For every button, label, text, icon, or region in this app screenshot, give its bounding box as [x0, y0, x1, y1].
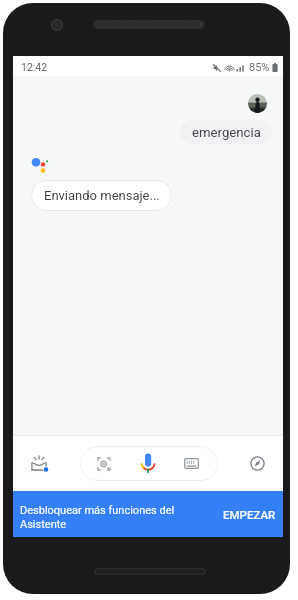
button[interactable]: Desbloquear más funciones del Asistente [13, 491, 283, 537]
button[interactable]: Voice search [126, 446, 170, 481]
button[interactable]: Account [248, 94, 267, 113]
staticText: Desbloquear más funciones del Asistente [20, 504, 198, 530]
button[interactable]: emergencia [180, 120, 272, 144]
button[interactable]: Keyboard [169, 446, 213, 481]
button[interactable]: Snapshot [21, 445, 57, 481]
button[interactable]: Google Lens [82, 446, 126, 481]
staticText: 85% [249, 61, 270, 74]
button[interactable]: Enviando mensaje... [31, 180, 172, 211]
staticText: 12:42 [21, 61, 48, 73]
staticText: EMPEZAR [223, 508, 276, 521]
button[interactable]: Explore [239, 445, 275, 481]
staticText: emergencia [192, 125, 261, 140]
staticText: Enviando mensaje... [44, 188, 160, 203]
